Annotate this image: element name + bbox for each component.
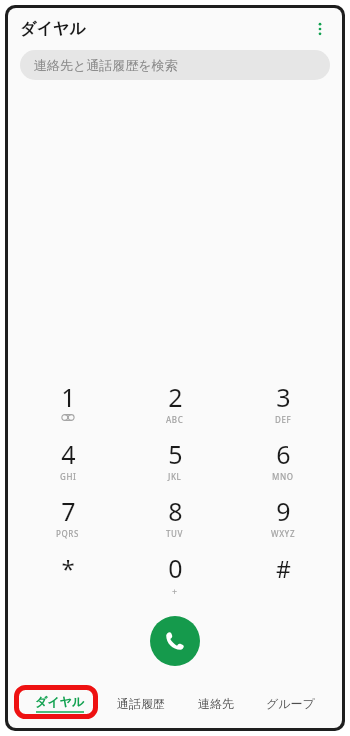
button[interactable]: 3 (235, 374, 331, 431)
staticText: 連絡先と通話履歴を検索 (34, 57, 178, 73)
staticText: 連絡先 (198, 696, 234, 711)
button[interactable]: 5 (127, 431, 223, 488)
staticText: 4 (61, 437, 76, 471)
button[interactable]: 8 (127, 488, 223, 545)
button[interactable]: 連絡先と通話履歴を検索 (20, 50, 330, 80)
staticText: PQRS (56, 528, 80, 539)
staticText: + (172, 585, 178, 597)
staticText: 0 (168, 551, 183, 585)
staticText: GHI (60, 471, 77, 482)
button[interactable]: 7 (20, 488, 116, 545)
button[interactable]: その他のオプション (304, 13, 336, 45)
staticText: 1 (61, 380, 76, 414)
staticText: ダイヤル (20, 19, 86, 39)
button[interactable]: 発信 (150, 616, 200, 666)
staticText: ダイヤル (35, 694, 85, 709)
button[interactable]: 9 (235, 488, 331, 545)
staticText: JKL (168, 471, 182, 482)
staticText: 9 (276, 494, 291, 528)
staticText: DEF (275, 414, 292, 425)
staticText: * (61, 552, 75, 585)
button[interactable]: ダイヤル (29, 690, 91, 717)
staticText: 2 (168, 380, 183, 414)
staticText: WXYZ (271, 528, 296, 539)
button[interactable]: 4 (20, 431, 116, 488)
staticText: グループ (266, 696, 315, 711)
button[interactable]: 1 (20, 374, 116, 431)
staticText: # (276, 553, 291, 584)
button[interactable]: 2 (127, 374, 223, 431)
button[interactable]: グループ (260, 692, 321, 715)
staticText: MNO (272, 471, 294, 482)
staticText: 7 (61, 494, 76, 528)
staticText: 3 (276, 380, 291, 414)
button[interactable]: 0 (127, 545, 223, 602)
staticText: 8 (168, 494, 183, 528)
button[interactable]: 通話履歴 (111, 692, 171, 715)
button[interactable]: # (235, 545, 331, 602)
button[interactable]: * (20, 545, 116, 602)
staticText: TUV (166, 528, 184, 539)
staticText: 通話履歴 (117, 696, 165, 711)
button[interactable]: 6 (235, 431, 331, 488)
button[interactable]: 連絡先 (192, 692, 240, 715)
staticText: 6 (276, 437, 291, 471)
staticText: ABC (166, 414, 184, 425)
staticText: 5 (168, 437, 183, 471)
